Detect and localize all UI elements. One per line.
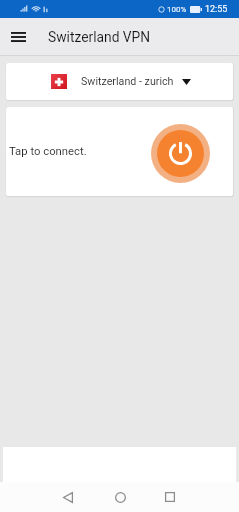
staticText: Tap to connect.	[9, 145, 87, 158]
button[interactable]: Connect to VPN	[151, 124, 210, 183]
button[interactable]: Recent apps	[150, 482, 190, 512]
button[interactable]: Open navigation menu	[7, 26, 29, 48]
button[interactable]: Switzerland - zurich	[6, 63, 233, 100]
button[interactable]: Back	[48, 482, 88, 512]
button[interactable]: Home	[100, 482, 140, 512]
staticText: 100%	[167, 5, 187, 14]
staticText: Switzerland - zurich	[81, 75, 174, 88]
staticText: 12:55	[205, 4, 228, 15]
staticText: Switzerland VPN	[48, 29, 151, 45]
